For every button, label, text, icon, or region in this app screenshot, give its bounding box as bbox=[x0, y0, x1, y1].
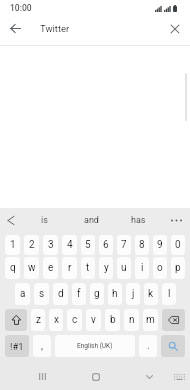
button[interactable]: 6 bbox=[99, 235, 113, 255]
staticText: , bbox=[41, 340, 43, 352]
button[interactable]: h bbox=[108, 283, 122, 305]
button[interactable]: p bbox=[171, 257, 185, 279]
button[interactable]: Hide keyboard bbox=[133, 360, 165, 390]
button[interactable]: . bbox=[139, 335, 157, 357]
staticText: j bbox=[132, 288, 135, 300]
button[interactable]: 4 bbox=[62, 235, 77, 255]
button[interactable]: k bbox=[144, 283, 158, 305]
staticText: n bbox=[129, 314, 135, 326]
staticText: English (UK) bbox=[77, 342, 113, 350]
staticText: 4 bbox=[67, 239, 73, 251]
button[interactable]: r bbox=[62, 257, 77, 279]
staticText: q bbox=[10, 262, 16, 274]
staticText: l bbox=[168, 288, 171, 300]
staticText: !#1 bbox=[10, 341, 24, 352]
button[interactable]: s bbox=[34, 283, 49, 305]
staticText: 9 bbox=[157, 239, 163, 251]
staticText: . bbox=[147, 340, 150, 352]
staticText: t bbox=[86, 262, 90, 274]
staticText: 2 bbox=[29, 239, 35, 251]
staticText: b bbox=[110, 314, 116, 326]
button[interactable]: y bbox=[99, 257, 113, 279]
button[interactable]: m bbox=[143, 309, 158, 331]
button[interactable]: , bbox=[33, 335, 51, 357]
staticText: f bbox=[77, 288, 81, 300]
button[interactable]: j bbox=[126, 283, 140, 305]
button[interactable]: Close bbox=[163, 17, 186, 40]
staticText: p bbox=[175, 262, 181, 274]
staticText: o bbox=[157, 262, 163, 274]
staticText: 7 bbox=[121, 239, 127, 251]
button[interactable]: l bbox=[162, 283, 176, 305]
staticText: 6 bbox=[103, 239, 109, 251]
button[interactable]: f bbox=[72, 283, 86, 305]
button[interactable]: 3 bbox=[43, 235, 58, 255]
staticText: is bbox=[41, 215, 48, 226]
staticText: r bbox=[68, 262, 72, 274]
button[interactable]: Previous suggestions bbox=[0, 208, 21, 232]
button[interactable]: !#1 bbox=[5, 335, 29, 357]
staticText: 0 bbox=[175, 239, 181, 251]
button[interactable]: 0 bbox=[171, 235, 185, 255]
button[interactable]: More options bbox=[162, 208, 190, 232]
button[interactable]: v bbox=[86, 309, 101, 331]
staticText: c bbox=[72, 314, 78, 326]
staticText: d bbox=[58, 288, 64, 300]
staticText: 5 bbox=[85, 239, 91, 251]
staticText: v bbox=[91, 314, 96, 326]
staticText: a bbox=[20, 288, 26, 300]
button[interactable]: Change keyboard bbox=[163, 360, 190, 390]
staticText: g bbox=[94, 288, 100, 300]
staticText: w bbox=[28, 262, 36, 274]
button[interactable]: z bbox=[31, 309, 45, 331]
button[interactable]: o bbox=[153, 257, 167, 279]
staticText: e bbox=[48, 262, 54, 274]
button[interactable]: 8 bbox=[135, 235, 149, 255]
staticText: m bbox=[146, 314, 155, 326]
button[interactable]: 5 bbox=[81, 235, 95, 255]
staticText: x bbox=[54, 314, 59, 326]
button[interactable]: and bbox=[68, 208, 115, 232]
staticText: u bbox=[121, 262, 127, 274]
staticText: has bbox=[131, 215, 146, 226]
button[interactable]: Shift bbox=[5, 309, 27, 331]
button[interactable]: has bbox=[115, 208, 162, 232]
button[interactable]: 2 bbox=[24, 235, 39, 255]
button[interactable]: a bbox=[15, 283, 30, 305]
button[interactable]: 9 bbox=[153, 235, 167, 255]
button[interactable]: 7 bbox=[117, 235, 131, 255]
staticText: y bbox=[104, 262, 109, 274]
staticText: 8 bbox=[139, 239, 145, 251]
button[interactable]: c bbox=[67, 309, 82, 331]
button[interactable]: Home bbox=[80, 360, 112, 390]
button[interactable]: w bbox=[24, 257, 39, 279]
button[interactable]: t bbox=[81, 257, 95, 279]
button[interactable]: q bbox=[5, 257, 20, 279]
staticText: k bbox=[148, 288, 154, 300]
button[interactable]: d bbox=[53, 283, 68, 305]
staticText: h bbox=[112, 288, 118, 300]
button[interactable]: i bbox=[135, 257, 149, 279]
staticText: z bbox=[36, 314, 41, 326]
button[interactable]: is bbox=[21, 208, 68, 232]
button[interactable]: Recents bbox=[26, 360, 58, 390]
button[interactable]: x bbox=[49, 309, 63, 331]
staticText: 1 bbox=[10, 239, 16, 251]
staticText: 10:00 bbox=[10, 3, 32, 13]
button[interactable]: Search bbox=[161, 335, 185, 357]
button[interactable]: Back bbox=[4, 17, 27, 40]
staticText: Twitter bbox=[40, 23, 70, 34]
button[interactable]: 1 bbox=[5, 235, 20, 255]
staticText: 3 bbox=[48, 239, 54, 251]
staticText: and bbox=[84, 215, 99, 226]
staticText: s bbox=[39, 288, 45, 300]
button[interactable]: Backspace bbox=[162, 309, 185, 331]
button[interactable]: g bbox=[90, 283, 104, 305]
button[interactable]: u bbox=[117, 257, 131, 279]
button[interactable]: e bbox=[43, 257, 58, 279]
staticText: i bbox=[141, 262, 144, 274]
button[interactable]: b bbox=[105, 309, 120, 331]
button[interactable]: n bbox=[124, 309, 139, 331]
button[interactable]: English (UK) bbox=[55, 335, 135, 357]
